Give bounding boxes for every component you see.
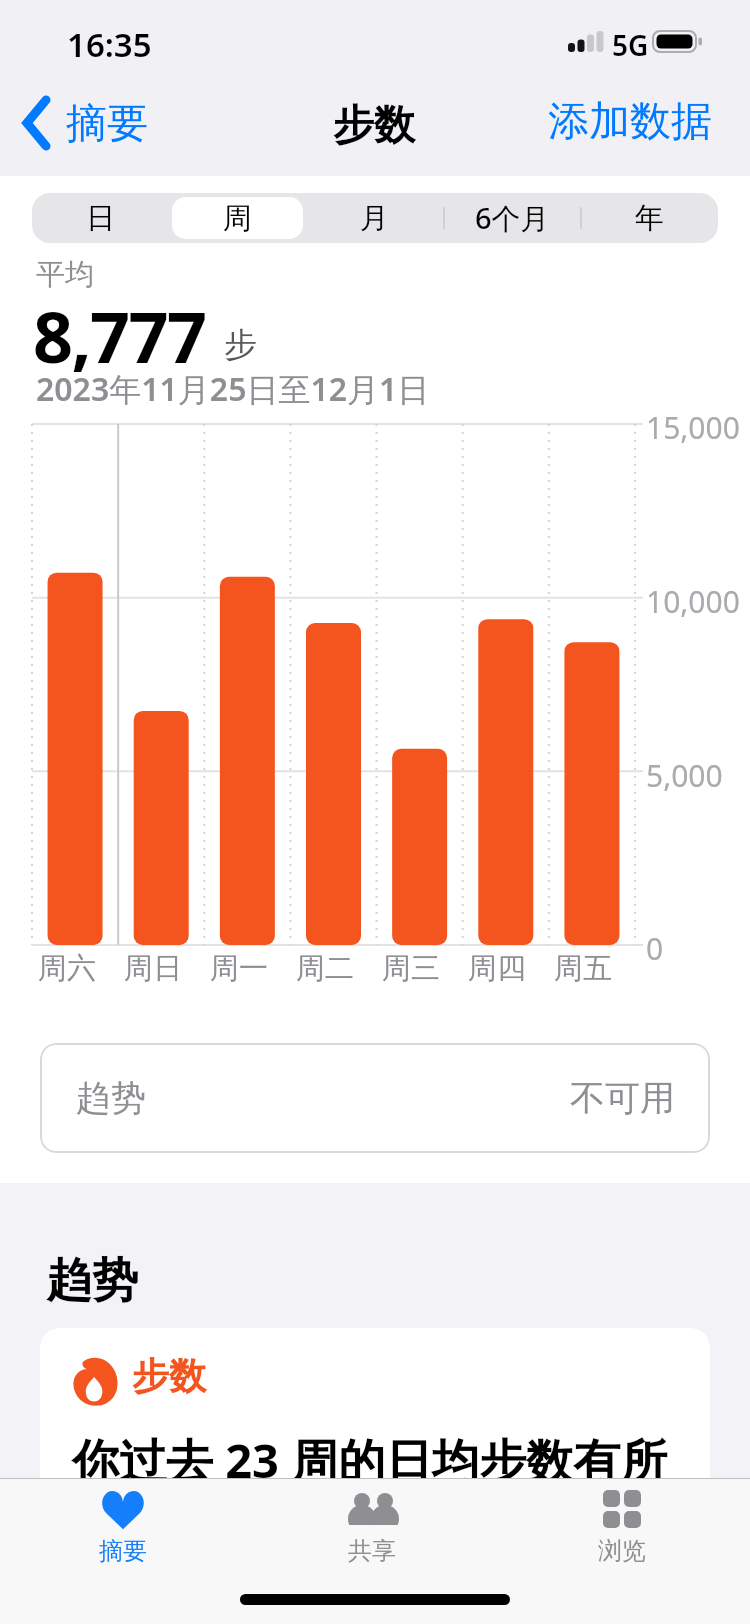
staticText: 10,000 [646,581,740,622]
staticText: 摘要 [66,98,148,150]
staticText: 浏览 [598,1536,646,1566]
staticText: 2023年11月25日至12月1日 [36,367,430,411]
staticText: 周日 [124,950,182,987]
staticText: 8,777 [33,288,206,383]
staticText: 日 [86,200,115,237]
staticText: 步 [224,324,257,366]
button[interactable]: 趋势 [40,1043,710,1153]
button[interactable]: 摘要 [53,1480,193,1568]
staticText: 6个月 [475,198,550,238]
staticText: 周四 [468,950,526,987]
staticText: 16:35 [67,22,152,67]
staticText: 周二 [296,950,354,987]
staticText: 月 [360,200,389,237]
button[interactable]: 添加数据 [548,96,712,148]
button[interactable]: 月 [306,193,443,243]
button[interactable]: 浏览 [552,1480,692,1568]
staticText: 平均 [36,256,94,293]
button[interactable]: 共享 [302,1480,442,1568]
staticText: 趋势 [46,1252,138,1310]
staticText: 周六 [38,950,96,987]
staticText: 周一 [210,950,268,987]
staticText: 15,000 [646,407,740,448]
staticText: 摘要 [99,1536,147,1566]
staticText: 你过去 23 周的日均步数有所 [72,1428,668,1478]
staticText: 不可用 [570,1076,675,1120]
staticText: 周五 [554,950,612,987]
button[interactable]: 年 [581,193,718,243]
staticText: 周三 [382,950,440,987]
staticText: 0 [646,928,664,969]
staticText: 5G [612,26,649,64]
staticText: 周 [223,200,252,237]
button[interactable]: 日 [32,193,169,243]
button[interactable]: 摘要 [18,96,148,152]
staticText: 添加数据 [548,96,712,148]
staticText: 共享 [348,1536,396,1566]
staticText: 年 [635,200,664,237]
staticText: 步数 [132,1353,206,1400]
staticText: 5,000 [646,755,723,796]
staticText: 趋势 [76,1076,146,1120]
button[interactable]: 周 [169,193,306,243]
button[interactable]: 6个月 [444,193,581,243]
staticText: 步数 [333,100,415,152]
button[interactable]: 步数 [40,1328,710,1478]
